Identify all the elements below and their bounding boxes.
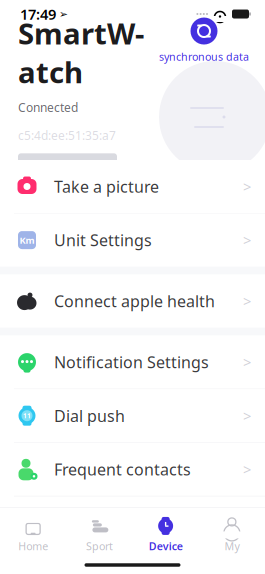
- staticText: ➢: [59, 8, 68, 20]
- staticText: >: [243, 460, 251, 479]
- staticText: My: [224, 539, 239, 553]
- button[interactable]: Notification Settings: [0, 336, 265, 389]
- staticText: Home: [18, 539, 48, 553]
- staticText: 11: [23, 411, 31, 420]
- button[interactable]: Device: [132, 514, 199, 556]
- staticText: >: [243, 230, 251, 250]
- button[interactable]: Sport: [66, 514, 132, 556]
- staticText: >: [243, 352, 251, 372]
- staticText: Connect apple health: [54, 290, 215, 312]
- button[interactable]: Unbound Device: [18, 153, 117, 174]
- staticText: Unit Settings: [54, 229, 152, 251]
- button[interactable]: 11: [0, 389, 265, 442]
- button[interactable]: Connect apple health: [0, 275, 265, 328]
- staticText: 17:49: [20, 4, 56, 24]
- staticText: Km: [19, 234, 34, 246]
- staticText: Device: [149, 539, 183, 553]
- staticText: SmartWatch: [18, 13, 144, 91]
- staticText: Connected: [18, 99, 78, 115]
- staticText: Unbound Device: [25, 157, 110, 171]
- staticText: synchronous data: [159, 49, 249, 64]
- staticText: Dial push: [54, 405, 125, 426]
- button[interactable]: Frequent contacts: [0, 443, 265, 496]
- staticText: Notification Settings: [54, 351, 209, 373]
- button[interactable]: Km: [0, 214, 265, 267]
- staticText: Take a picture: [54, 176, 159, 197]
- button[interactable]: My: [199, 514, 265, 556]
- staticText: >: [243, 291, 251, 311]
- staticText: >: [243, 177, 251, 196]
- staticText: Frequent contacts: [54, 459, 191, 480]
- staticText: >: [243, 406, 251, 425]
- staticText: Sport: [86, 539, 113, 553]
- button[interactable]: Home: [0, 514, 66, 556]
- staticText: c5:4d:ee:51:35:a7: [18, 127, 116, 143]
- button[interactable]: synchronous data: [159, 17, 249, 64]
- button[interactable]: Take a picture: [0, 160, 265, 213]
